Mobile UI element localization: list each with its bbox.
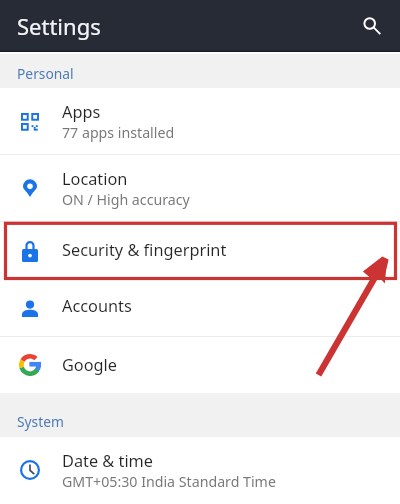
button[interactable]: Date & time bbox=[0, 437, 400, 503]
staticText: 77 apps installed bbox=[62, 123, 175, 142]
staticText: Google bbox=[62, 354, 118, 376]
button[interactable]: Location bbox=[0, 155, 400, 221]
staticText: Security & fingerprint bbox=[62, 239, 227, 261]
staticText: System bbox=[17, 412, 64, 431]
button[interactable]: Security & fingerprint bbox=[0, 222, 400, 280]
staticText: Apps bbox=[62, 101, 101, 123]
button[interactable]: Accounts bbox=[0, 280, 400, 336]
staticText: Settings bbox=[17, 11, 101, 41]
staticText: Personal bbox=[17, 64, 74, 83]
staticText: ON / High accuracy bbox=[62, 190, 190, 209]
button[interactable]: Apps bbox=[0, 88, 400, 154]
button[interactable]: Google bbox=[0, 337, 400, 393]
staticText: Date & time bbox=[62, 450, 154, 472]
staticText: GMT+05:30 India Standard Time bbox=[62, 472, 276, 491]
button[interactable]: Search bbox=[350, 4, 394, 48]
staticText: Location bbox=[62, 168, 128, 190]
staticText: Accounts bbox=[62, 295, 132, 317]
